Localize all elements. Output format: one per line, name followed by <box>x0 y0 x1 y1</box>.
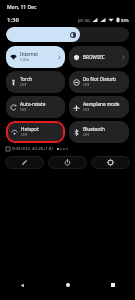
staticText: (535x532, 40-28+1-8) <box>12 146 53 152</box>
button[interactable]: Auto-rotate <box>6 96 65 118</box>
button[interactable]: Settings <box>91 156 130 169</box>
button[interactable]: Aeroplane mode <box>69 96 129 118</box>
button[interactable]: Torch <box>6 71 65 93</box>
staticText: Auto-rotate <box>20 101 46 107</box>
button[interactable]: Bluetooth <box>69 121 129 143</box>
button[interactable]: Edit tiles <box>5 156 44 169</box>
staticText: 1:36 <box>7 16 19 24</box>
staticText: 83% <box>121 18 129 23</box>
staticText: Torch <box>20 76 33 82</box>
button[interactable]: Power <box>48 156 87 169</box>
staticText: Mon, 11 Dec <box>7 4 37 11</box>
button[interactable]: BROWSEC <box>69 46 129 68</box>
button[interactable]: Brightness <box>6 27 129 42</box>
staticText: Hotspot <box>21 126 39 132</box>
staticText: CiOx <box>20 57 30 63</box>
staticText: JIO 4G <box>78 18 90 23</box>
staticText: Do Not Disturb <box>83 76 116 82</box>
button[interactable]: Home <box>45 270 90 300</box>
staticText: Internet <box>20 51 39 57</box>
button[interactable]: Recents <box>90 270 135 300</box>
staticText: Off <box>83 132 90 138</box>
button[interactable]: Internet <box>6 46 65 68</box>
button[interactable]: Do Not Disturb <box>69 71 129 93</box>
staticText: Off <box>20 107 27 113</box>
staticText: Bluetooth <box>83 126 105 132</box>
staticText: Off <box>83 107 90 113</box>
staticText: Aeroplane mode <box>83 101 120 107</box>
button[interactable]: Back <box>0 270 45 300</box>
staticText: Off <box>21 132 28 138</box>
staticText: Off <box>83 82 90 88</box>
staticText: BROWSEC <box>83 54 105 60</box>
button[interactable]: Hotspot <box>7 122 64 142</box>
staticText: Off <box>20 82 27 88</box>
